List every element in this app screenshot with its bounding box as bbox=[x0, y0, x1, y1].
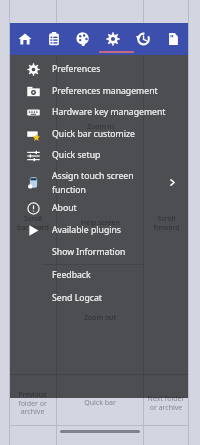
button[interactable]: Hardware key management bbox=[10, 101, 188, 123]
button[interactable]: Zoom in bbox=[57, 112, 143, 142]
button[interactable]: Previous folder or archive bbox=[9, 385, 56, 421]
staticText: Hardware key management bbox=[52, 106, 166, 118]
staticText: Previous folder or archive bbox=[9, 390, 56, 416]
staticText: Show Information bbox=[52, 246, 126, 258]
button[interactable]: Reader bbox=[158, 23, 188, 55]
button[interactable]: Scroll backward bbox=[9, 205, 56, 241]
button[interactable]: Help screen bbox=[57, 205, 143, 241]
staticText: Preferences management bbox=[52, 85, 158, 97]
staticText: Next folder or archive bbox=[144, 394, 188, 412]
staticText: Zoom out bbox=[84, 313, 116, 323]
staticText: Scroll backward bbox=[17, 214, 49, 232]
button[interactable]: Bookshelf bbox=[39, 23, 68, 55]
staticText: Quick bar bbox=[84, 398, 116, 408]
button[interactable]: Home bbox=[10, 23, 39, 55]
staticText: Zoom in bbox=[87, 122, 114, 132]
button[interactable]: History bbox=[128, 23, 158, 55]
button[interactable]: Preferences management bbox=[10, 80, 188, 102]
staticText: Send Logcat bbox=[52, 292, 102, 304]
button[interactable]: Quick bar customize bbox=[10, 123, 188, 145]
staticText: Scroll forward bbox=[153, 214, 180, 232]
staticText: Quick bar customize bbox=[52, 128, 135, 140]
staticText: Available plugins bbox=[52, 224, 122, 236]
staticText: Feedback bbox=[52, 269, 91, 281]
button[interactable]: About bbox=[10, 197, 188, 219]
button[interactable]: Themes bbox=[68, 23, 98, 55]
button[interactable]: Preferences bbox=[10, 58, 188, 80]
button[interactable]: Show Information bbox=[10, 241, 188, 263]
staticText: Help screen bbox=[81, 218, 120, 228]
staticText: About bbox=[52, 202, 77, 214]
button[interactable]: Send Logcat bbox=[10, 287, 188, 309]
button[interactable]: Feedback bbox=[10, 264, 188, 286]
button[interactable]: Available plugins bbox=[10, 219, 188, 241]
button[interactable]: Quick setup bbox=[10, 144, 188, 166]
button[interactable]: Next folder or archive bbox=[144, 385, 188, 421]
staticText: Assign touch screen function bbox=[52, 170, 134, 195]
staticText: Quick setup bbox=[52, 149, 101, 161]
button[interactable]: Assign touch screen function bbox=[10, 169, 188, 196]
staticText: Preferences bbox=[52, 63, 101, 75]
button[interactable]: Scroll forward bbox=[144, 205, 188, 241]
button[interactable]: Quick bar bbox=[57, 385, 143, 421]
button[interactable]: Settings bbox=[98, 23, 128, 55]
